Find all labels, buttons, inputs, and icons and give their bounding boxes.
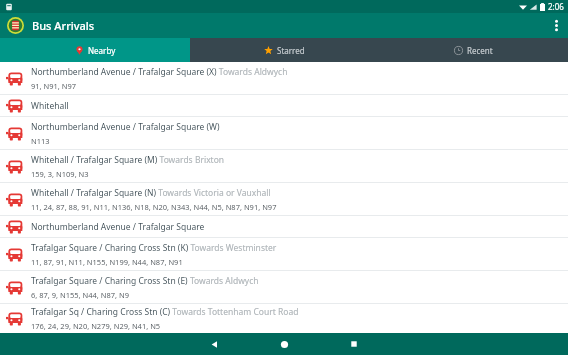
- staticText: Northumberland Avenue / Trafalgar Square…: [31, 66, 288, 78]
- staticText: Northumberland Avenue / Trafalgar Square…: [31, 121, 220, 133]
- staticText: 6, 87, 9, N155, N44, N87, N9: [31, 290, 130, 300]
- button[interactable]: Whitehall / Trafalgar Square (M) Towards…: [0, 150, 568, 182]
- button[interactable]: Trafalgar Square / Charing Cross Stn (E)…: [0, 271, 568, 303]
- button[interactable]: Nearby: [0, 38, 190, 62]
- staticText: Whitehall: [31, 100, 69, 112]
- staticText: Starred: [277, 45, 305, 56]
- staticText: Trafalgar Square / Charing Cross Stn (E)…: [31, 275, 259, 287]
- staticText: N113: [31, 136, 50, 146]
- staticText: 2:06: [548, 1, 564, 12]
- staticText: Whitehall / Trafalgar Square (N) Towards…: [31, 187, 271, 199]
- staticText: 91, N91, N97: [31, 81, 77, 91]
- staticText: 176, 24, 29, N20, N279, N29, N41, N5: [31, 321, 161, 331]
- button[interactable]: Whitehall: [0, 95, 568, 116]
- staticText: Bus Arrivals: [32, 18, 95, 33]
- button[interactable]: Back: [179, 333, 249, 355]
- staticText: Whitehall / Trafalgar Square (M) Towards…: [31, 154, 225, 166]
- button[interactable]: Northumberland Avenue / Trafalgar Square: [0, 216, 568, 237]
- staticText: Recent: [467, 45, 493, 56]
- button[interactable]: Whitehall / Trafalgar Square (N) Towards…: [0, 183, 568, 215]
- staticText: Northumberland Avenue / Trafalgar Square: [31, 221, 205, 233]
- button[interactable]: Northumberland Avenue / Trafalgar Square…: [0, 62, 568, 94]
- staticText: 11, 87, 91, N11, N155, N199, N44, N87, N…: [31, 257, 183, 267]
- button[interactable]: Trafalgar Sq / Charing Cross Stn (C) Tow…: [0, 304, 568, 333]
- staticText: Trafalgar Square / Charing Cross Stn (K)…: [31, 242, 277, 254]
- button[interactable]: Recent: [379, 38, 568, 62]
- button[interactable]: Northumberland Avenue / Trafalgar Square…: [0, 117, 568, 149]
- button[interactable]: Home: [249, 333, 319, 355]
- staticText: 11, 24, 87, 88, 91, N11, N136, N18, N20,…: [31, 202, 277, 212]
- button[interactable]: Recent apps: [319, 333, 389, 355]
- staticText: Nearby: [88, 45, 116, 56]
- staticText: Trafalgar Sq / Charing Cross Stn (C) Tow…: [31, 306, 299, 318]
- button[interactable]: More options: [544, 13, 568, 38]
- button[interactable]: Starred: [190, 38, 379, 62]
- staticText: 159, 3, N109, N3: [31, 169, 89, 179]
- button[interactable]: Trafalgar Square / Charing Cross Stn (K)…: [0, 238, 568, 270]
